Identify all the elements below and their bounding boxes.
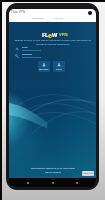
staticText: Register or log in to your Flow VPN acco… bbox=[14, 39, 92, 42]
button[interactable]: Home bbox=[47, 178, 59, 187]
button[interactable]: Back bbox=[22, 178, 34, 187]
staticText: Cancel Anytime bbox=[45, 171, 61, 174]
staticText: FREE TRIAL bbox=[39, 68, 49, 70]
button[interactable]: Recents bbox=[71, 178, 83, 187]
staticText: MORE INFO bbox=[82, 172, 94, 175]
staticText: W bbox=[52, 31, 58, 38]
other: Camera bbox=[88, 11, 92, 15]
button[interactable]: MORE INFO bbox=[82, 171, 94, 176]
staticText: manage an existing subscription. bbox=[36, 43, 70, 46]
staticText: Subscriptions Starting at $1.00 USD/Mont… bbox=[31, 167, 75, 170]
button[interactable]: LOG IN bbox=[53, 61, 65, 72]
staticText: GET APP bbox=[54, 17, 64, 20]
staticText: LOG IN bbox=[56, 68, 63, 70]
staticText: FL bbox=[42, 31, 48, 38]
staticText: VPN bbox=[59, 32, 68, 38]
button[interactable]: Email bbox=[22, 46, 41, 51]
staticText: Flow VPN bbox=[11, 10, 25, 14]
staticText: Password bbox=[22, 53, 32, 56]
staticText: Email bbox=[22, 46, 28, 49]
button[interactable]: SUBSCRIBE bbox=[32, 17, 45, 20]
button[interactable]: FREE TRIAL bbox=[38, 61, 50, 72]
staticText: SUBSCRIBE bbox=[32, 17, 45, 20]
button[interactable]: Password bbox=[22, 53, 41, 58]
button[interactable]: GET APP bbox=[54, 17, 64, 20]
